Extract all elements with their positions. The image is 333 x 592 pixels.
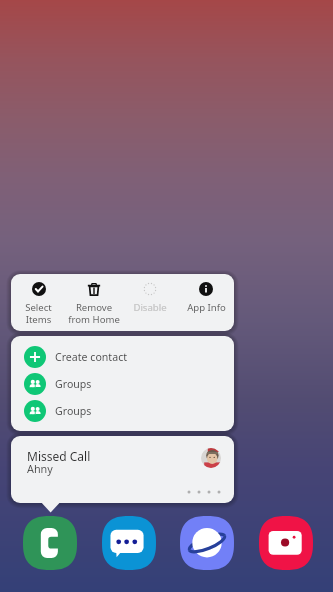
button[interactable]: Disable [122,274,178,314]
staticText: Groups [55,377,92,391]
staticText: Ahny [27,461,53,476]
staticText: Create contact [55,350,128,364]
button[interactable]: Missed Call [11,436,234,503]
button[interactable]: Remove from Home [66,274,122,325]
staticText: Missed Call [27,448,91,464]
button[interactable]: App Info [178,274,234,314]
staticText: Groups [55,404,92,418]
staticText: Disable [133,301,167,314]
button[interactable]: Create contact [11,343,234,370]
staticText: Select Items [25,301,52,325]
button[interactable]: Internet [180,516,234,570]
staticText: Remove from Home [68,301,120,325]
button[interactable]: Phone [23,516,77,570]
button[interactable]: Camera [259,516,313,570]
button[interactable]: Messages [102,516,156,570]
staticText: App Info [187,301,226,314]
button[interactable]: Groups [11,370,234,397]
button[interactable]: Select Items [11,274,66,325]
button[interactable]: Groups [11,397,234,424]
